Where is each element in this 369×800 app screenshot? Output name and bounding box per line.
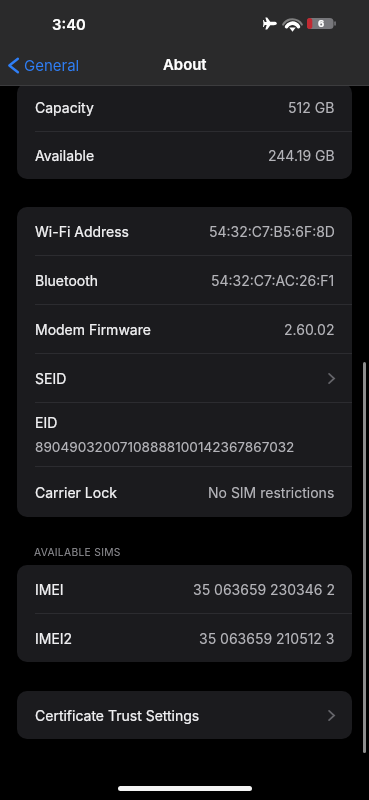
- other: Battery 6 percent: [307, 18, 337, 29]
- other: Wi-Fi: [285, 18, 300, 30]
- staticText: General: [24, 56, 80, 74]
- staticText: Capacity: [35, 99, 94, 116]
- staticText: 35 063659 230346 2: [193, 581, 335, 598]
- button[interactable]: Bluetooth: [17, 256, 352, 305]
- button[interactable]: Modem Firmware: [17, 305, 352, 354]
- button[interactable]: Capacity: [17, 83, 352, 132]
- button[interactable]: IMEI2: [17, 614, 352, 662]
- button[interactable]: EID: [17, 403, 352, 467]
- staticText: 244.19 GB: [268, 147, 335, 164]
- staticText: 512 GB: [288, 99, 335, 116]
- staticText: IMEI: [35, 581, 64, 598]
- staticText: IMEI2: [35, 630, 73, 647]
- staticText: AVAILABLE SIMS: [34, 546, 121, 558]
- staticText: SEID: [35, 370, 67, 387]
- button[interactable]: SEID: [17, 354, 352, 403]
- staticText: EID: [35, 414, 58, 431]
- button[interactable]: Wi-Fi Address: [17, 207, 352, 256]
- staticText: 6: [318, 18, 325, 29]
- staticText: 35 063659 210512 3: [199, 630, 335, 647]
- staticText: No SIM restrictions: [208, 484, 335, 501]
- button[interactable]: IMEI: [17, 565, 352, 614]
- button[interactable]: Certificate Trust Settings: [17, 691, 352, 739]
- button[interactable]: General: [0, 47, 92, 83]
- staticText: 3:40: [52, 16, 86, 34]
- staticText: About: [163, 56, 207, 74]
- other: Airplane mode: [263, 17, 277, 30]
- staticText: Wi-Fi Address: [35, 223, 130, 240]
- staticText: 54:32:C7:AC:26:F1: [211, 272, 335, 289]
- staticText: 54:32:C7:B5:6F:8D: [209, 223, 335, 240]
- button[interactable]: Carrier Lock: [17, 467, 352, 517]
- button[interactable]: Available: [17, 132, 352, 179]
- staticText: 89049032007108888100142367867032: [35, 439, 295, 455]
- staticText: 2.60.02: [284, 321, 335, 338]
- staticText: Bluetooth: [35, 272, 99, 289]
- staticText: Available: [35, 147, 95, 164]
- staticText: Carrier Lock: [35, 484, 117, 501]
- staticText: Certificate Trust Settings: [35, 707, 200, 724]
- staticText: Modem Firmware: [35, 321, 151, 338]
